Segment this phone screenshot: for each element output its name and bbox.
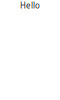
staticText: Hello — [20, 0, 40, 11]
